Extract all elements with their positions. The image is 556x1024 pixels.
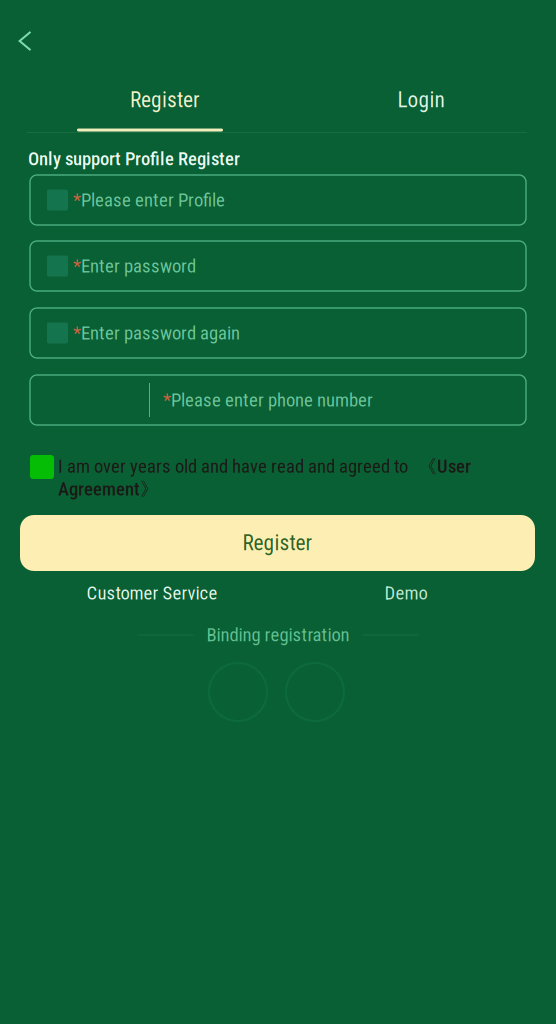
button[interactable]: I am over years old and have read and ag… (30, 455, 500, 501)
button[interactable]: * (30, 175, 526, 225)
staticText: Customer Service (86, 582, 217, 604)
button[interactable]: Customer Service (25, 578, 279, 608)
staticText: Register (242, 530, 312, 555)
staticText: Login (397, 87, 444, 112)
staticText: Enter password again (81, 322, 240, 344)
staticText: Please enter Profile (81, 189, 225, 211)
staticText: I am over years old and have read and ag… (58, 455, 471, 501)
button[interactable]: Demo (279, 578, 533, 608)
staticText: * (73, 255, 81, 277)
button[interactable]: Back (3, 19, 47, 63)
staticText: Please enter phone number (171, 389, 373, 411)
button[interactable]: Register (65, 78, 265, 122)
staticText: Only support Profile Register (28, 148, 240, 170)
staticText: Enter password (81, 255, 196, 277)
button[interactable]: Register (20, 515, 535, 571)
button[interactable]: Login (321, 78, 521, 122)
button[interactable]: * (30, 308, 526, 358)
staticText: * (73, 189, 81, 211)
button[interactable]: * (30, 375, 526, 425)
staticText: Register (130, 87, 200, 112)
staticText: * (73, 322, 81, 344)
button[interactable]: * (30, 241, 526, 291)
staticText: Binding registration (206, 624, 349, 646)
staticText: Demo (384, 582, 427, 604)
staticText: * (163, 389, 171, 411)
